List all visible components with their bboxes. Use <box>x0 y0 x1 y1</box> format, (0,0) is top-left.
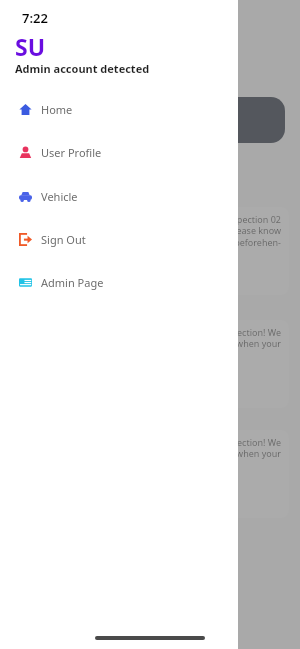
staticText: Reminder for your inspection! We will no… <box>118 326 281 350</box>
staticText: Sign Out <box>41 232 86 247</box>
staticText: Vehicle <box>41 189 78 204</box>
staticText: 7:22 <box>22 9 48 27</box>
other: Sign Out <box>19 233 32 246</box>
button[interactable]: Home <box>0 97 238 121</box>
button[interactable]: Vehicle <box>0 184 238 208</box>
staticText: Reminder for your inspection! We will no… <box>118 436 281 460</box>
staticText: Admin Page <box>41 275 104 290</box>
other: Vehicle <box>19 190 32 203</box>
staticText: Admin account detected <box>15 61 150 76</box>
staticText: User Profile <box>41 145 102 160</box>
button[interactable]: Sign Out <box>0 227 238 251</box>
other: User Profile <box>19 146 32 159</box>
staticText: Reminder for your inspection 02 please k… <box>118 213 281 249</box>
other: Admin Page <box>19 276 32 289</box>
button[interactable]: User Profile <box>0 140 238 164</box>
button[interactable]: Admin Page <box>0 270 238 294</box>
other: Home <box>19 103 32 116</box>
staticText: SU <box>15 31 46 62</box>
staticText: Home <box>41 102 73 117</box>
